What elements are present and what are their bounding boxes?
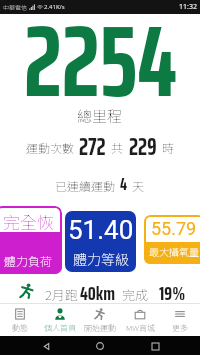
staticText: 55.79 [151, 218, 197, 239]
button[interactable]: 更多 [160, 304, 200, 336]
staticText: 最大攝氧量 [149, 244, 199, 258]
staticText: 中華電信 [3, 3, 28, 12]
staticText: 個人首頁 [44, 322, 76, 334]
staticText: 229 [129, 128, 157, 166]
staticText: 運動次數 [26, 139, 75, 156]
staticText: 19% [159, 277, 186, 301]
button[interactable]: 2月跑 [0, 280, 200, 304]
staticText: 272 [79, 128, 106, 166]
button[interactable]: 個人首頁 [40, 304, 80, 336]
button[interactable]: MW商城 [120, 304, 160, 336]
button[interactable]: 動態 [0, 304, 40, 336]
staticText: 2月跑 [45, 285, 78, 304]
staticText: 天 [132, 177, 145, 194]
staticText: 40km [80, 277, 116, 301]
staticText: 總里程 [77, 105, 123, 127]
staticText: 已連續運動 [55, 177, 116, 194]
staticText: 完成 [122, 285, 149, 304]
button[interactable]: Back [37, 337, 55, 355]
button[interactable]: Recent apps [146, 337, 164, 355]
button[interactable]: 51.40 [65, 211, 136, 272]
staticText: 更多 [172, 322, 188, 334]
button[interactable]: 開始運動 [80, 304, 120, 336]
button[interactable]: Home [91, 337, 109, 355]
staticText: 51.40 [68, 215, 134, 245]
staticText: 共 [111, 139, 124, 156]
staticText: 11:32 [179, 2, 197, 12]
staticText: 動態 [12, 322, 28, 334]
staticText: 4 [120, 170, 128, 198]
staticText: 體力等級 [73, 249, 129, 269]
button[interactable]: 完全恢 [0, 206, 62, 274]
staticText: 時 [162, 139, 175, 156]
staticText: 開始運動 [84, 322, 116, 334]
button[interactable]: 55.79 [144, 215, 200, 264]
staticText: MW商城 [126, 322, 155, 334]
staticText: 完全恢 [3, 209, 54, 234]
staticText: 體力負荷 [4, 252, 53, 269]
staticText: 2254 [24, 0, 177, 139]
staticText: 2.41K/s [44, 3, 65, 11]
